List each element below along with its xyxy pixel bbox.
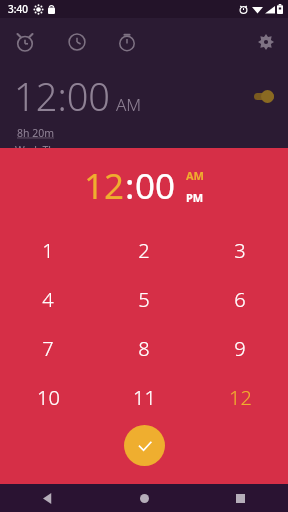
staticText: AM bbox=[186, 168, 204, 183]
staticText: 6 bbox=[234, 286, 246, 313]
staticText: 4 bbox=[42, 286, 54, 313]
staticText: 3:40 bbox=[8, 2, 28, 16]
button[interactable]: Home bbox=[96, 484, 192, 512]
staticText: 12 bbox=[229, 384, 252, 411]
staticText: 5 bbox=[138, 286, 150, 313]
button[interactable]: Timer bbox=[114, 29, 140, 55]
button[interactable]: 12 bbox=[84, 162, 125, 210]
button[interactable]: 12 bbox=[192, 373, 288, 422]
button[interactable]: 8 bbox=[96, 324, 192, 373]
button[interactable]: Back bbox=[0, 484, 96, 512]
button[interactable]: 9 bbox=[192, 324, 288, 373]
staticText: Wed, Thu bbox=[15, 143, 62, 148]
staticText: : bbox=[125, 162, 135, 210]
staticText: PM bbox=[186, 190, 204, 205]
button[interactable]: 1 bbox=[0, 226, 96, 275]
staticText: 10 bbox=[37, 384, 60, 411]
staticText: 8h 20m bbox=[17, 126, 55, 140]
button[interactable]: Toggle alarm bbox=[250, 88, 280, 104]
staticText: 7 bbox=[42, 335, 54, 362]
staticText: 12 bbox=[84, 162, 125, 210]
staticText: 2 bbox=[138, 237, 150, 264]
staticText: 11 bbox=[133, 384, 156, 411]
staticText: 12:00 bbox=[14, 70, 111, 122]
button[interactable]: 2 bbox=[96, 226, 192, 275]
staticText: 00 bbox=[135, 162, 176, 210]
button[interactable]: Recents bbox=[192, 484, 288, 512]
button[interactable]: Alarm bbox=[12, 29, 38, 55]
button[interactable]: World clock bbox=[64, 29, 90, 55]
button[interactable]: 3 bbox=[192, 226, 288, 275]
button[interactable]: 6 bbox=[192, 275, 288, 324]
button[interactable]: AM bbox=[186, 168, 204, 183]
button[interactable]: 7 bbox=[0, 324, 96, 373]
staticText: 1 bbox=[42, 237, 54, 264]
button[interactable]: 11 bbox=[96, 373, 192, 422]
staticText: 9 bbox=[234, 335, 246, 362]
button[interactable]: 10 bbox=[0, 373, 96, 422]
button[interactable]: Settings bbox=[254, 30, 278, 54]
staticText: AM bbox=[116, 93, 142, 116]
staticText: 8 bbox=[138, 335, 150, 362]
button[interactable]: 4 bbox=[0, 275, 96, 324]
button[interactable]: 12:00 bbox=[0, 66, 288, 148]
button[interactable]: Confirm bbox=[124, 425, 165, 466]
button[interactable]: 5 bbox=[96, 275, 192, 324]
button[interactable]: PM bbox=[186, 190, 204, 205]
staticText: 3 bbox=[234, 237, 246, 264]
button[interactable]: 00 bbox=[135, 162, 176, 210]
